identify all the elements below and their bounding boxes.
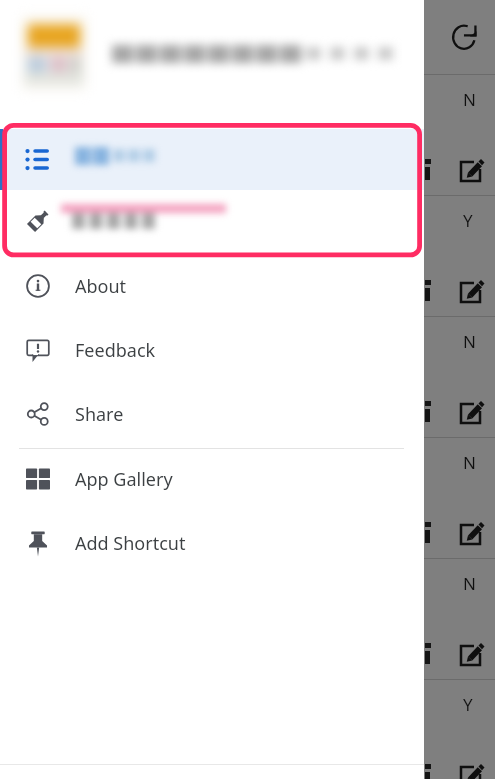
button[interactable]: Y	[0, 196, 495, 316]
button[interactable]: N	[0, 559, 495, 679]
staticText: Share	[75, 402, 124, 427]
button[interactable]: N	[0, 317, 495, 437]
button[interactable]: About	[0, 254, 424, 318]
button[interactable]: App Gallery	[0, 447, 424, 511]
staticText: App Gallery	[75, 467, 173, 492]
staticText: About	[75, 274, 127, 299]
button[interactable]: N	[0, 438, 495, 558]
staticText: N	[463, 88, 476, 111]
button[interactable]: Edit	[455, 275, 487, 307]
staticText: N	[463, 572, 476, 595]
button[interactable]: Feedback	[0, 318, 424, 382]
button[interactable]	[0, 129, 424, 190]
button[interactable]: Edit	[455, 154, 487, 186]
button[interactable]: Edit	[455, 396, 487, 428]
staticText: Y	[463, 209, 473, 232]
button[interactable]: Edit	[455, 759, 487, 779]
button[interactable]	[0, 0, 424, 108]
staticText: N	[463, 330, 476, 353]
staticText: Feedback	[75, 338, 156, 363]
staticText: Add Shortcut	[75, 531, 186, 556]
button[interactable]: N	[0, 75, 495, 195]
button[interactable]: Share	[0, 382, 424, 446]
button[interactable]	[0, 190, 424, 252]
staticText: Y	[463, 693, 473, 716]
button[interactable]: Y	[0, 680, 495, 779]
button[interactable]: Edit	[455, 517, 487, 549]
staticText: N	[463, 451, 476, 474]
button[interactable]: Add Shortcut	[0, 511, 424, 575]
button[interactable]: Refresh	[441, 14, 487, 60]
button[interactable]: Edit	[455, 638, 487, 670]
